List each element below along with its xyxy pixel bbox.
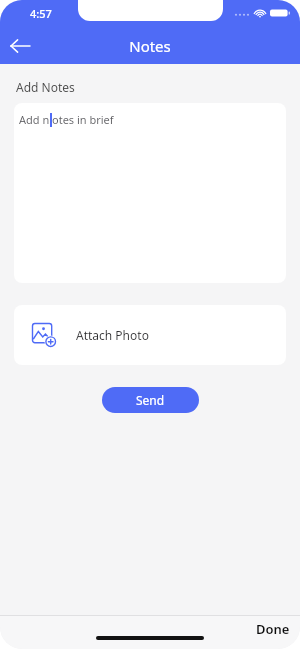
- staticText: Add n: [19, 112, 50, 127]
- staticText: Done: [256, 620, 290, 638]
- staticText: Send: [136, 392, 165, 408]
- staticText: 4:57: [30, 6, 52, 21]
- button[interactable]: Done: [252, 617, 294, 641]
- button[interactable]: Add n: [14, 103, 286, 283]
- staticText: Attach Photo: [76, 327, 149, 343]
- staticText: otes in brief: [52, 112, 114, 127]
- button[interactable]: Attach Photo: [14, 305, 286, 365]
- button[interactable]: Send: [102, 387, 199, 413]
- button[interactable]: Back: [0, 28, 40, 64]
- staticText: Add Notes: [16, 79, 75, 95]
- staticText: Notes: [129, 36, 171, 56]
